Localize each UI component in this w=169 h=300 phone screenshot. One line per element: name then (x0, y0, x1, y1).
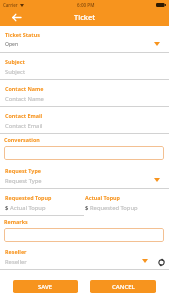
staticText: SAVE (38, 283, 53, 291)
staticText: Conversation (4, 136, 40, 143)
staticText: $ (85, 204, 89, 212)
staticText: Contact Email (5, 112, 43, 119)
staticText: Ticket (74, 12, 95, 22)
staticText: Requested Topup (5, 194, 52, 201)
button[interactable]: Remarks (4, 216, 164, 243)
staticText: Request Type (5, 177, 42, 185)
staticText: Ticket Status (5, 31, 40, 38)
button[interactable]: SAVE (13, 280, 78, 293)
staticText: $ (5, 204, 9, 212)
button[interactable]: Actual Topup (84, 189, 169, 216)
staticText: Contact Name (5, 85, 44, 92)
staticText: Request Type (5, 167, 42, 174)
staticText: Actual Topup (85, 194, 121, 201)
button[interactable]: Reseller (0, 243, 169, 270)
staticText: Remarks (4, 218, 28, 225)
staticText: Requested Topup (90, 204, 138, 212)
staticText: Contact Email (5, 122, 43, 130)
button[interactable]: Subject (0, 53, 169, 80)
button[interactable]: Contact Name (0, 80, 169, 107)
staticText: Contact Name (5, 95, 44, 103)
staticText: Subject (5, 58, 25, 65)
staticText: Actual Topup (10, 204, 46, 212)
button[interactable]: Requested Topup (0, 189, 84, 216)
button[interactable]: Ticket Status (0, 26, 169, 53)
staticText: Reseller (5, 258, 27, 266)
staticText: Carrier (3, 2, 18, 8)
button[interactable]: Request Type (0, 162, 169, 189)
staticText: 6:00 PM (77, 2, 95, 8)
button[interactable]: Contact Email (0, 107, 169, 134)
staticText: Open (5, 41, 19, 48)
staticText: Reseller (5, 248, 27, 255)
button[interactable]: CANCEL (90, 280, 156, 293)
staticText: Subject (5, 68, 25, 76)
staticText: CANCEL (112, 283, 135, 291)
button[interactable]: Refresh (157, 258, 166, 267)
button[interactable]: Back (10, 11, 23, 24)
button[interactable]: Conversation (4, 134, 164, 162)
